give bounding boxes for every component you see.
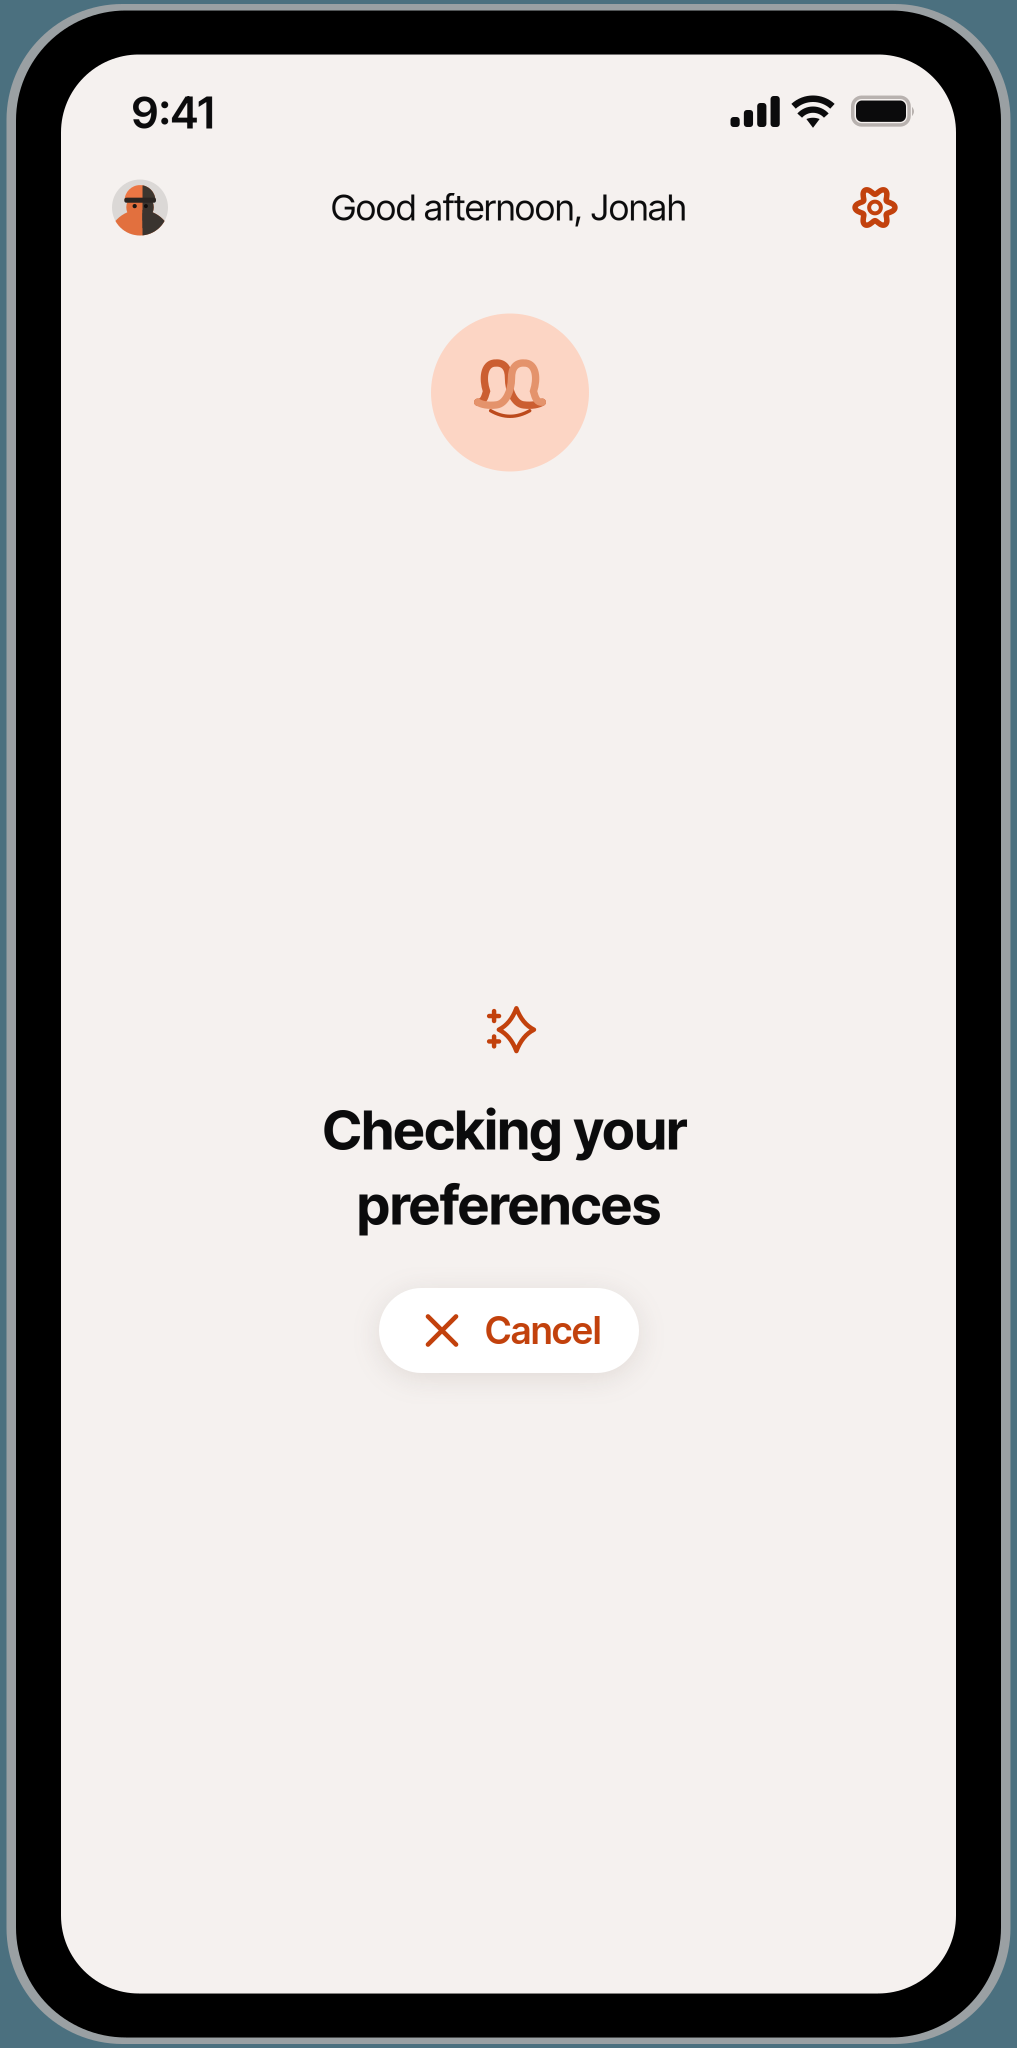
staticText: Cancel: [485, 1308, 601, 1353]
staticText: Good afternoon, Jonah: [331, 186, 687, 229]
button[interactable]: Profile: [112, 179, 168, 235]
button[interactable]: Cancel: [379, 1288, 639, 1373]
staticText: Checking your: [322, 1096, 687, 1162]
button[interactable]: Settings: [847, 179, 903, 235]
staticText: 9:41: [131, 86, 214, 139]
staticText: preferences: [357, 1171, 661, 1237]
